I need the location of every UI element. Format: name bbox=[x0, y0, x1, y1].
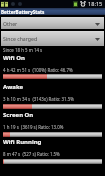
button[interactable]: Screen On bbox=[0, 111, 105, 137]
staticText: Wifi On bbox=[3, 54, 25, 62]
button[interactable]: Since charged bbox=[1, 31, 104, 46]
staticText: 4 h 42 m 51 s (100%) Ratio: 46.7% bbox=[3, 67, 73, 73]
staticText: 3 h 10 m 34 s (3143x) Ratio: 31.5% bbox=[3, 96, 74, 102]
button[interactable]: Wifi Running bbox=[0, 138, 105, 164]
staticText: Screen On bbox=[3, 111, 34, 119]
button[interactable]: Other bbox=[1, 17, 104, 29]
button[interactable]: Since 18 h 5 m 14 s bbox=[0, 46, 105, 79]
staticText: 1 h 19 s (3619 s) Ratio: 13.0% bbox=[3, 124, 64, 130]
button[interactable]: Awake bbox=[0, 83, 105, 109]
staticText: 8 m 47 s (527 s) Ratio: 1.5% bbox=[3, 151, 60, 157]
staticText: Awake bbox=[3, 83, 24, 91]
staticText: Other bbox=[3, 20, 18, 27]
staticText: Wifi Running bbox=[3, 138, 42, 146]
staticText: Since 18 h 5 m 14 s bbox=[3, 47, 43, 53]
staticText: 18:15 bbox=[88, 0, 103, 8]
staticText: Since charged bbox=[3, 35, 38, 42]
staticText: BetterBatteryStats bbox=[1, 9, 45, 15]
